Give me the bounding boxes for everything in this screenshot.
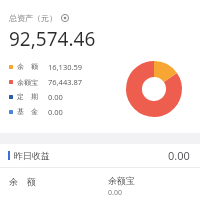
staticText: 76,443.87 bbox=[48, 77, 83, 87]
staticText: 定 期 bbox=[17, 92, 38, 102]
staticText: 基 金 bbox=[17, 107, 38, 117]
button[interactable]: 基 金 bbox=[9, 107, 191, 117]
staticText: 余额宝 bbox=[17, 78, 38, 87]
button[interactable]: 定 期 bbox=[9, 92, 191, 102]
staticText: 余 额 bbox=[17, 62, 38, 72]
staticText: 余额宝 bbox=[108, 175, 135, 186]
button[interactable]: Toggle balance visibility bbox=[60, 13, 70, 23]
staticText: 16,130.59 bbox=[48, 62, 83, 72]
staticText: 0.00 bbox=[48, 92, 63, 102]
button[interactable]: 余 额 bbox=[0, 175, 100, 187]
staticText: 总资产（元） bbox=[9, 13, 57, 23]
staticText: 0.00 bbox=[48, 107, 63, 117]
staticText: 余 额 bbox=[9, 175, 36, 187]
staticText: 0.00 bbox=[108, 188, 122, 198]
staticText: 昨日收益 bbox=[14, 150, 50, 161]
button[interactable]: 余额宝 bbox=[9, 77, 191, 87]
staticText: 92,574.46 bbox=[9, 26, 96, 52]
staticText: 0.00 bbox=[168, 148, 190, 163]
button[interactable]: 余 额 bbox=[9, 62, 191, 72]
button[interactable]: 昨日收益 bbox=[0, 144, 200, 167]
button[interactable]: 余额宝 bbox=[100, 175, 200, 198]
